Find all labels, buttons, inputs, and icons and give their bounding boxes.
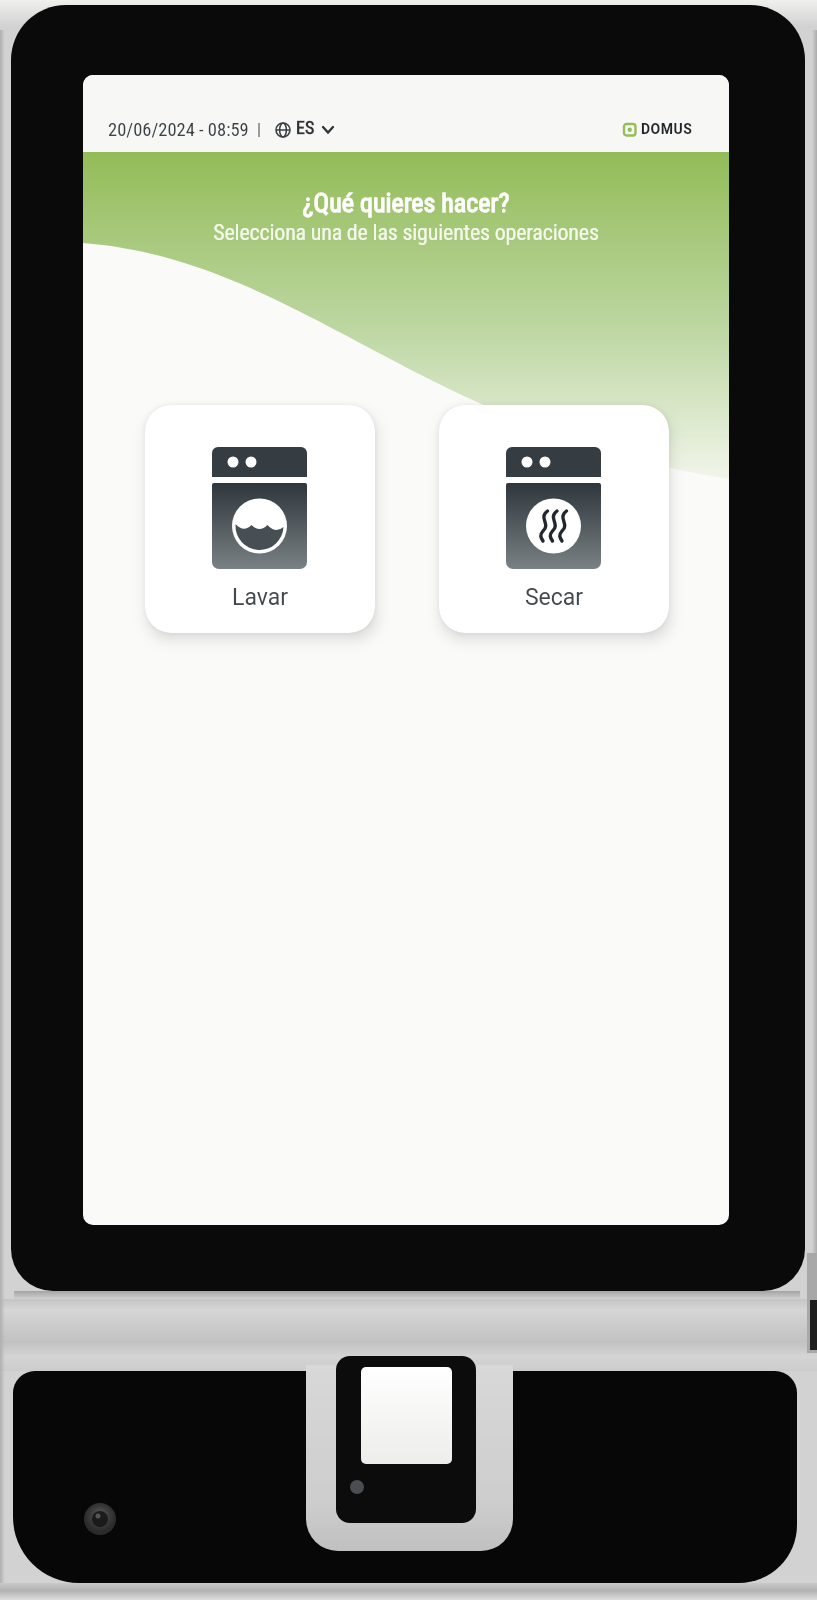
staticText: Secar: [439, 584, 669, 611]
staticText: DOMUS: [641, 121, 693, 135]
button[interactable]: Lavar: [145, 405, 375, 633]
button[interactable]: ES: [269, 109, 341, 149]
staticText: 20/06/2024 - 08:59: [108, 119, 249, 141]
staticText: Selecciona una de las siguientes operaci…: [83, 220, 729, 246]
button[interactable]: Secar: [439, 405, 669, 633]
staticText: Lavar: [145, 584, 375, 611]
staticText: ES: [296, 117, 315, 138]
staticText: ¿Qué quieres hacer?: [83, 188, 729, 218]
